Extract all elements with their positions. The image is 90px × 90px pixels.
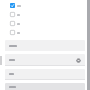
button[interactable] (0, 10, 86, 19)
button[interactable]: Toggle password visibility (75, 57, 81, 63)
button[interactable] (0, 28, 86, 37)
button[interactable] (0, 19, 86, 28)
button[interactable]: Toggle password visibility (5, 54, 85, 65)
button[interactable] (0, 1, 86, 10)
button[interactable] (5, 69, 85, 79)
button[interactable] (5, 40, 85, 51)
button[interactable] (5, 83, 85, 90)
